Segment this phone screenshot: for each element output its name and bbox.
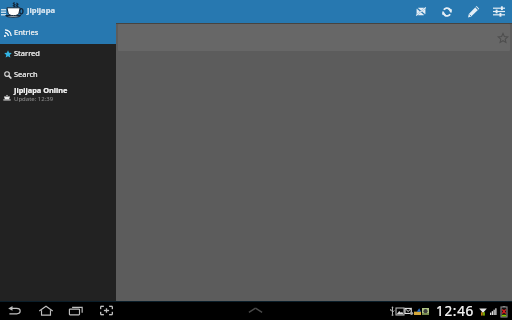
staticText: Update: 12:39 [14, 95, 54, 103]
staticText: Search [14, 69, 38, 79]
button[interactable]: Navigate up [0, 0, 8, 23]
button[interactable]: Starred [0, 44, 116, 65]
button[interactable]: Screenshot [97, 301, 115, 320]
button[interactable]: Mark all read [408, 0, 434, 23]
staticText: Jipijapa Online [14, 85, 68, 95]
staticText: Entries [14, 27, 39, 37]
staticText: Jipijapa [27, 5, 56, 15]
button[interactable]: Entries [0, 23, 116, 44]
button[interactable]: Search [0, 65, 116, 86]
staticText: Starred [14, 48, 40, 58]
button[interactable]: Refresh [434, 0, 460, 23]
staticText: 12:46 [436, 302, 475, 320]
button[interactable]: Home [37, 301, 55, 320]
button[interactable]: Settings [486, 0, 512, 23]
button[interactable]: Recent apps [67, 301, 85, 320]
button[interactable]: Back [6, 301, 24, 320]
button[interactable]: Jipijapa Online [0, 86, 116, 108]
button[interactable]: Compose [460, 0, 486, 23]
